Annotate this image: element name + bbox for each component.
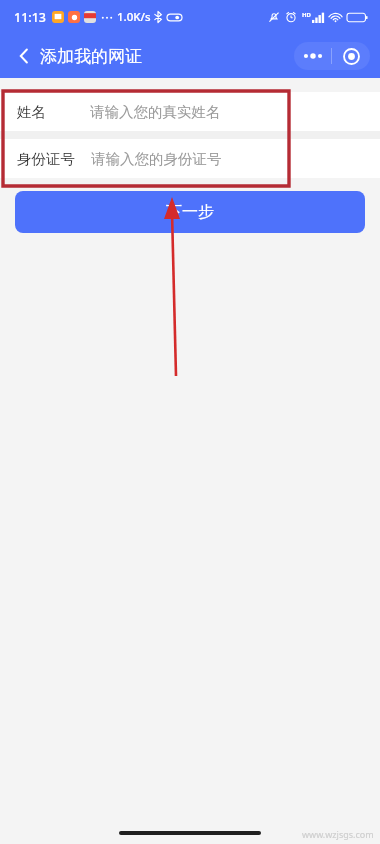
button[interactable]: 姓名 [0, 92, 380, 131]
staticText: 下一步 [166, 202, 214, 222]
staticText: 添加我的网证 [40, 46, 142, 67]
button[interactable]: Close [332, 42, 370, 70]
staticText: 身份证号 [17, 150, 75, 168]
staticText: 1.0K/s [117, 9, 151, 25]
button[interactable]: 身份证号 [0, 139, 380, 178]
staticText: 请输入您的身份证号 [91, 150, 222, 168]
staticText: www.wzjsgs.com [302, 828, 374, 840]
staticText: 11:13 [14, 9, 47, 26]
staticText: HD [302, 11, 311, 19]
button[interactable]: More options [294, 42, 331, 70]
button[interactable]: Back [8, 40, 40, 72]
staticText: 请输入您的真实姓名 [90, 103, 221, 121]
button[interactable]: 下一步 [15, 191, 365, 233]
staticText: 姓名 [17, 103, 46, 121]
